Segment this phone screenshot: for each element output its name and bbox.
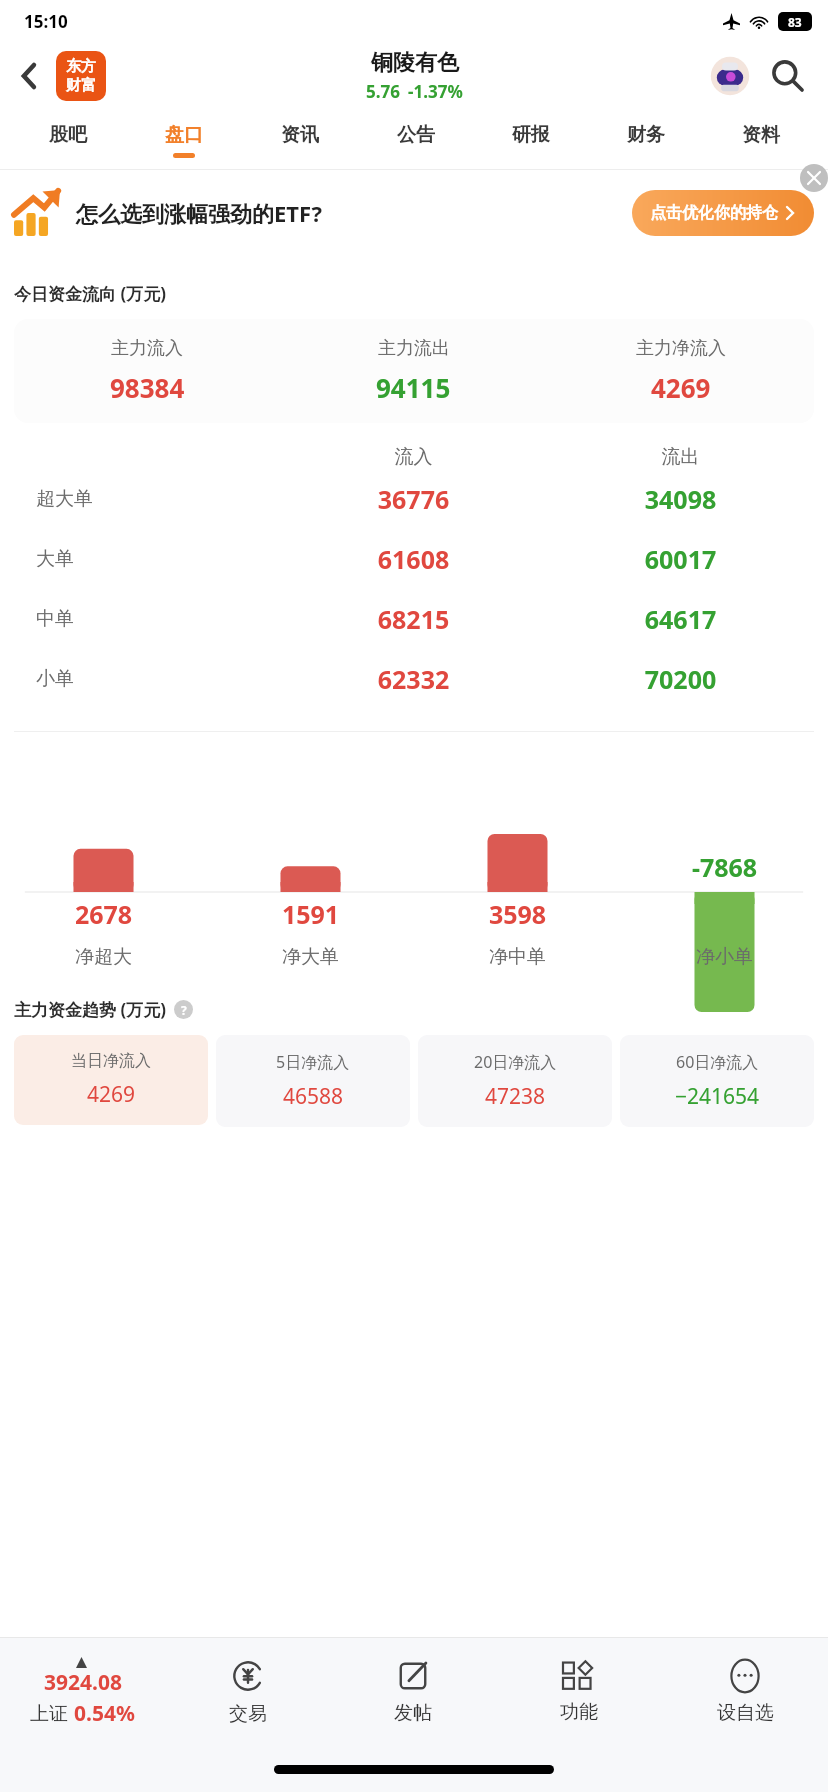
staticText: 交易 xyxy=(229,1702,267,1726)
button[interactable]: 点击优化你的持仓 xyxy=(632,190,814,236)
button[interactable]: 功能 xyxy=(496,1638,662,1746)
staticText: 设自选 xyxy=(717,1701,774,1725)
staticText: 盘口 xyxy=(165,123,203,147)
staticText: 东方 xyxy=(66,57,96,76)
staticText: 5日净流入 xyxy=(276,1051,350,1073)
staticText: 4269 xyxy=(651,370,711,405)
staticText: 中单 xyxy=(36,607,280,631)
staticText: 64617 xyxy=(547,602,814,636)
staticText: 小单 xyxy=(36,667,280,691)
staticText: 47238 xyxy=(485,1082,546,1111)
staticText: 46588 xyxy=(283,1082,344,1111)
staticText: 5.76 xyxy=(366,80,400,103)
staticText: 怎么选到涨幅强劲的ETF? xyxy=(76,198,323,228)
staticText: 3924.08 xyxy=(44,1668,122,1697)
staticText: 当日净流入 xyxy=(71,1051,151,1071)
button[interactable]: 研报 xyxy=(473,110,588,170)
staticText: 流入 xyxy=(280,445,547,469)
button[interactable]: 60日净流入 xyxy=(620,1035,814,1127)
staticText: 研报 xyxy=(512,123,550,147)
button[interactable]: 发帖 xyxy=(330,1638,496,1746)
staticText: 大单 xyxy=(36,547,280,571)
button[interactable]: 交易 xyxy=(165,1638,330,1746)
button[interactable]: 主力流入 xyxy=(14,319,814,423)
staticText: 铜陵有色 xyxy=(371,49,459,77)
staticText: 主力净流入 xyxy=(636,337,726,360)
staticText: 60017 xyxy=(547,542,814,576)
staticText: 0.54% xyxy=(74,1699,135,1728)
staticText: 4269 xyxy=(87,1080,136,1109)
staticText: 流出 xyxy=(547,445,814,469)
button[interactable]: 5日净流入 xyxy=(216,1035,410,1127)
staticText: 98384 xyxy=(110,370,185,405)
button[interactable]: 资讯 xyxy=(242,110,358,170)
staticText: 主力流出 xyxy=(378,337,450,360)
staticText: 15:10 xyxy=(24,10,68,33)
staticText: 净超大 xyxy=(0,945,207,969)
staticText: −241654 xyxy=(675,1082,760,1111)
button[interactable]: 小单 xyxy=(14,649,814,709)
button[interactable]: 超大单 xyxy=(14,469,814,529)
staticText: 主力流入 xyxy=(111,337,183,360)
staticText: 资讯 xyxy=(281,123,319,147)
staticText: 34098 xyxy=(547,482,814,516)
button[interactable]: 资料 xyxy=(703,110,818,170)
button[interactable]: 中单 xyxy=(14,589,814,649)
staticText: 主力资金趋势 (万元) xyxy=(14,998,166,1021)
staticText: 36776 xyxy=(280,482,547,516)
button[interactable]: 东方财富 xyxy=(56,51,106,101)
staticText: 功能 xyxy=(560,1700,598,1724)
staticText: 94115 xyxy=(376,370,451,405)
staticText: 财富 xyxy=(66,76,96,95)
staticText: 20日净流入 xyxy=(474,1051,557,1073)
staticText: 61608 xyxy=(280,542,547,576)
staticText: 62332 xyxy=(280,662,547,696)
button[interactable]: Back xyxy=(8,54,52,98)
button[interactable]: Help xyxy=(174,1000,193,1019)
button[interactable]: Close ad xyxy=(800,164,828,192)
button[interactable]: 大单 xyxy=(14,529,814,589)
button[interactable]: 3924.08 xyxy=(0,1638,165,1746)
staticText: -1.37% xyxy=(408,80,463,103)
staticText: 股吧 xyxy=(49,123,87,147)
staticText: 上证 xyxy=(30,1702,68,1726)
staticText: 超大单 xyxy=(36,487,280,511)
staticText: 68215 xyxy=(280,602,547,636)
button[interactable]: Search xyxy=(764,52,812,100)
staticText: 净小单 xyxy=(621,945,828,969)
staticText: 净大单 xyxy=(207,945,414,969)
staticText: 3598 xyxy=(414,897,621,931)
button[interactable]: 公告 xyxy=(358,110,473,170)
staticText: 净中单 xyxy=(414,945,621,969)
button[interactable]: 设自选 xyxy=(662,1638,828,1746)
staticText: 60日净流入 xyxy=(676,1051,759,1073)
staticText: ? xyxy=(181,1002,187,1018)
staticText: -7868 xyxy=(621,850,828,884)
staticText: 财务 xyxy=(627,123,665,147)
staticText: 今日资金流向 (万元) xyxy=(14,282,166,305)
button[interactable]: 股吧 xyxy=(10,110,126,170)
button[interactable]: 财务 xyxy=(588,110,703,170)
staticText: 70200 xyxy=(547,662,814,696)
staticText: 资料 xyxy=(742,123,780,147)
button[interactable]: 盘口 xyxy=(126,110,242,170)
staticText: 公告 xyxy=(397,123,435,147)
staticText: 83 xyxy=(788,14,802,30)
staticText: 点击优化你的持仓 xyxy=(650,203,778,223)
staticText: 1591 xyxy=(207,897,414,931)
button[interactable]: Assistant xyxy=(706,52,754,100)
staticText: 2678 xyxy=(0,897,207,931)
button[interactable]: 20日净流入 xyxy=(418,1035,612,1127)
button[interactable]: 当日净流入 xyxy=(14,1035,208,1125)
staticText: 发帖 xyxy=(394,1701,432,1725)
